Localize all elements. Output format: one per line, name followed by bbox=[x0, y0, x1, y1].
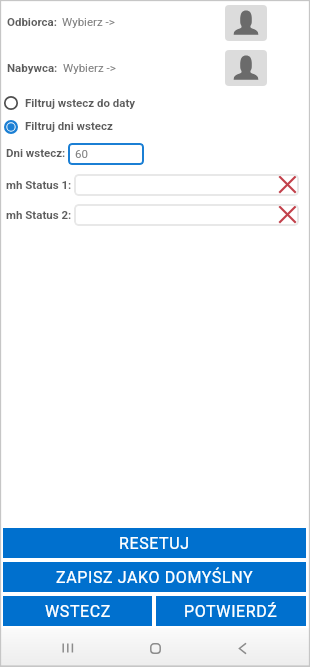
button[interactable]: 60 bbox=[68, 143, 144, 165]
button[interactable]: Wyczyść bbox=[74, 204, 299, 226]
staticText: RESETUJ bbox=[119, 534, 190, 553]
button[interactable]: Wyczyść bbox=[279, 176, 296, 193]
button[interactable]: Wybierz kontakt bbox=[225, 5, 267, 41]
button[interactable]: Nabywca: bbox=[7, 61, 116, 74]
staticText: Filtruj wstecz do daty bbox=[25, 96, 136, 109]
button[interactable]: ZAPISZ JAKO DOMYŚLNY bbox=[3, 562, 306, 592]
button[interactable]: mh Status 1: bbox=[6, 178, 72, 191]
button[interactable]: Wybierz kontakt bbox=[225, 50, 267, 86]
button[interactable]: WSTECZ bbox=[3, 596, 152, 626]
button[interactable]: mh Status 2: bbox=[6, 208, 72, 221]
staticText: ZAPISZ JAKO DOMYŚLNY bbox=[56, 568, 254, 587]
button[interactable]: POTWIERDŹ bbox=[156, 596, 306, 626]
staticText: Dni wstecz: bbox=[6, 146, 66, 159]
button[interactable] bbox=[3, 94, 310, 112]
staticText: Filtruj dni wstecz bbox=[25, 119, 113, 132]
staticText: POTWIERDŹ bbox=[184, 602, 278, 621]
button[interactable]: Recent apps bbox=[49, 629, 87, 667]
button[interactable]: Dni wstecz: bbox=[6, 146, 66, 159]
button[interactable]: RESETUJ bbox=[3, 528, 306, 558]
staticText: 60 bbox=[75, 147, 88, 160]
staticText: Odbiorca: bbox=[7, 15, 57, 28]
button[interactable]: Back bbox=[223, 629, 261, 667]
staticText: Wybierz -> bbox=[62, 15, 115, 28]
staticText: Wybierz -> bbox=[63, 61, 116, 74]
button[interactable]: Home bbox=[136, 629, 174, 667]
staticText: WSTECZ bbox=[45, 602, 111, 621]
button[interactable]: Wyczyść bbox=[74, 174, 299, 196]
button[interactable] bbox=[3, 118, 310, 136]
button[interactable]: Odbiorca: bbox=[7, 15, 115, 28]
staticText: mh Status 1: bbox=[6, 178, 72, 191]
button[interactable]: Wyczyść bbox=[279, 206, 296, 223]
staticText: mh Status 2: bbox=[6, 208, 72, 221]
staticText: Nabywca: bbox=[7, 61, 58, 74]
